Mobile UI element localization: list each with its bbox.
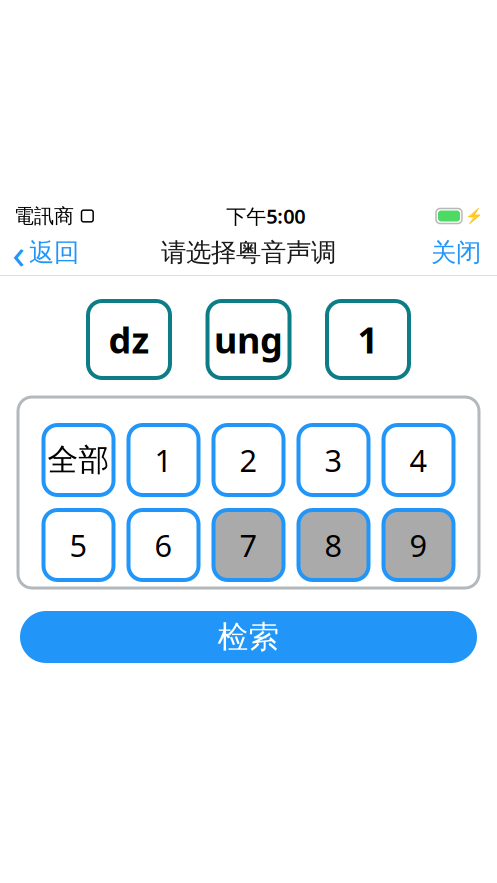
staticText: 请选择粤音声调 [161,237,336,268]
staticText: 6 [154,525,172,565]
button[interactable]: 1 [327,301,409,378]
button[interactable]: 全部 [43,425,113,495]
button[interactable]: 7 [213,510,283,580]
staticText: 关闭 [431,237,481,268]
button[interactable]: 3 [298,425,368,495]
button[interactable]: 5 [43,510,113,580]
staticText: 9 [409,525,427,565]
button[interactable]: 6 [128,510,198,580]
staticText: 1 [154,440,172,480]
button[interactable]: 8 [298,510,368,580]
staticText: 8 [324,525,342,565]
staticText: dz [108,316,149,363]
staticText: 下午5:00 [226,203,305,229]
staticText: 1 [357,316,378,363]
button[interactable]: dz [88,301,170,378]
button[interactable]: ‹ [0,230,91,274]
staticText: 4 [409,440,427,480]
button[interactable]: 关闭 [415,230,497,274]
staticText: 電訊商 [14,204,74,228]
button[interactable]: 4 [383,425,453,495]
staticText: ung [214,316,283,363]
staticText: 7 [239,525,257,565]
staticText: 全部 [47,441,109,479]
button[interactable]: 1 [128,425,198,495]
staticText: 返回 [29,237,79,268]
staticText: 3 [324,440,342,480]
button[interactable]: 检索 [20,611,477,663]
staticText: ‹ [12,224,25,281]
staticText: 5 [69,525,87,565]
button[interactable]: 2 [213,425,283,495]
staticText: ⚡ [465,208,483,224]
button[interactable]: 9 [383,510,453,580]
button[interactable]: ung [207,301,289,378]
staticText: 检索 [217,618,279,656]
staticText: 2 [239,440,257,480]
